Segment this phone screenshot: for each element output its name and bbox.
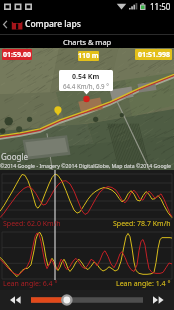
button[interactable]: 0.54 Km [59, 70, 113, 91]
staticText: 11:50 [150, 1, 171, 12]
staticText: 110 m [78, 51, 99, 61]
staticText: Google [1, 151, 28, 162]
staticText: 01:51.998 [138, 50, 170, 60]
staticText: ©2014 Google - Imagery ©2014 DigitalGlob… [0, 162, 172, 169]
staticText: 0.54 Km [72, 72, 100, 82]
staticText: 64.4 Km/h, 6.9 ° [63, 82, 109, 90]
staticText: Lean angle: 1.4 ° [116, 279, 171, 289]
staticText: 01:59.00 [3, 50, 31, 60]
staticText: Speed: 78.7 Km/h [113, 219, 171, 229]
button[interactable]: Navigate up [0, 13, 174, 35]
staticText: Speed: 62.0 Km/h [3, 219, 61, 229]
button[interactable]: 110 m [78, 51, 99, 61]
button[interactable]: Rewind [0, 290, 31, 310]
staticText: Charts & map [63, 37, 112, 47]
button[interactable]: Charts & map [0, 35, 174, 48]
staticText: Lean angle: 6.4 ° [3, 279, 58, 289]
button[interactable]: 01:51.998 [135, 49, 172, 60]
other: Navigate up [0, 13, 25, 35]
button[interactable]: 01:59.00 [2, 49, 32, 60]
button[interactable] [31, 290, 143, 310]
staticText: Compare laps [25, 18, 81, 30]
button[interactable]: Fast forward [143, 290, 174, 310]
